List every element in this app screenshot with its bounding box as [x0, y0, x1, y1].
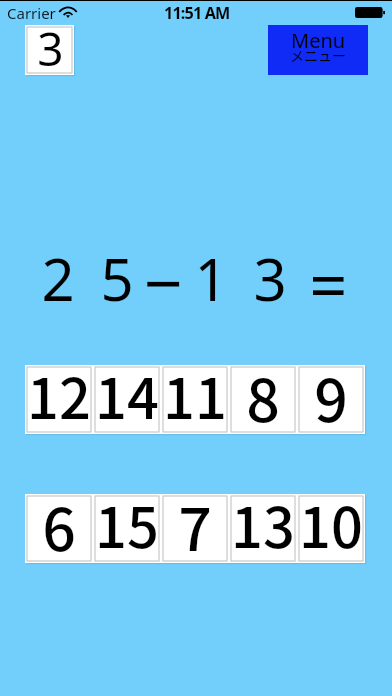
staticText: 15 [95, 483, 159, 552]
staticText: Carrier [7, 3, 56, 23]
staticText: 1 [194, 239, 228, 318]
staticText: メニュー [290, 45, 346, 65]
staticText: 12 [27, 354, 91, 423]
staticText: 13 [231, 483, 295, 552]
other: Battery full [355, 7, 385, 18]
button[interactable]: 7 [161, 494, 229, 563]
staticText: 5 [100, 239, 134, 318]
staticText: 2 [41, 239, 75, 318]
staticText: 8 [246, 354, 280, 423]
staticText: 3 [253, 239, 287, 318]
staticText: 7 [178, 483, 212, 552]
staticText: 14 [95, 354, 159, 423]
staticText: 11 [163, 354, 227, 423]
button[interactable]: 13 [229, 494, 297, 563]
staticText: = [309, 238, 348, 329]
button[interactable]: 12 [25, 365, 93, 434]
button[interactable]: 11 [161, 365, 229, 434]
button[interactable]: 8 [229, 365, 297, 434]
staticText: 11:51 AM [164, 2, 230, 24]
other: Wi-Fi signal [60, 6, 76, 18]
button[interactable]: 9 [297, 365, 365, 434]
button[interactable]: 15 [93, 494, 161, 563]
staticText: 6 [42, 483, 76, 552]
button[interactable]: 6 [25, 494, 93, 563]
button[interactable]: 14 [93, 365, 161, 434]
button[interactable]: 10 [297, 494, 365, 563]
staticText: 10 [299, 483, 363, 552]
staticText: Menu [291, 27, 346, 54]
staticText: − [144, 235, 183, 328]
button[interactable]: Menu [268, 25, 368, 75]
staticText: 9 [314, 354, 348, 423]
staticText: 3 [37, 17, 64, 67]
